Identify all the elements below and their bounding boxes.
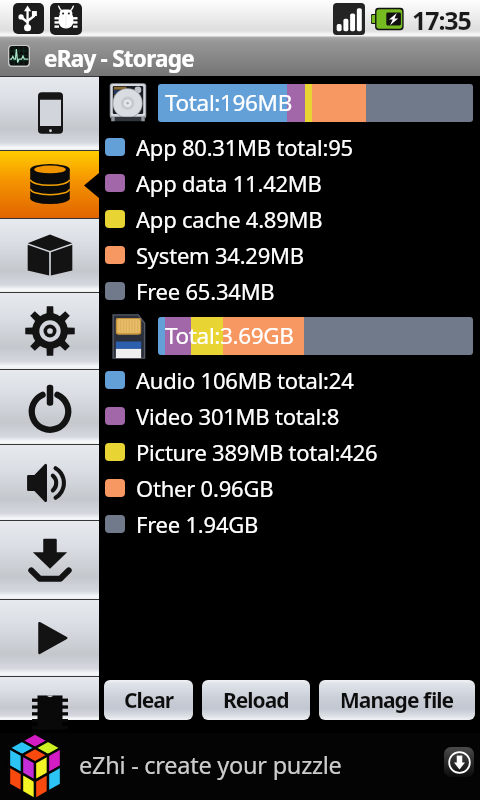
button[interactable]: Device xyxy=(0,76,99,150)
button[interactable]: App cache 4.89MB xyxy=(99,202,480,236)
button[interactable]: Download xyxy=(444,747,474,777)
staticText: Free 65.34MB xyxy=(136,276,275,306)
staticText: Total:3.69GB xyxy=(165,320,294,351)
button[interactable]: Storage xyxy=(0,150,99,218)
staticText: System 34.29MB xyxy=(136,240,304,270)
staticText: App 80.31MB total:95 xyxy=(136,132,353,162)
button[interactable]: Picture 389MB total:426 xyxy=(99,435,480,469)
button[interactable]: Video 301MB total:8 xyxy=(99,399,480,433)
staticText: Other 0.96GB xyxy=(136,473,274,503)
button[interactable]: Clear xyxy=(104,680,193,720)
button[interactable]: eZhi - create your puzzle xyxy=(0,733,480,800)
staticText: Audio 106MB total:24 xyxy=(136,365,354,395)
button[interactable]: Total:196MB xyxy=(158,84,473,122)
button[interactable]: Manage file xyxy=(319,680,475,720)
staticText: 17:35 xyxy=(412,3,471,37)
button[interactable]: Settings xyxy=(0,292,99,369)
button[interactable]: Download xyxy=(0,520,99,599)
staticText: Free 1.94GB xyxy=(136,509,259,539)
button[interactable]: Free 65.34MB xyxy=(99,274,480,308)
staticText: Total:196MB xyxy=(165,87,292,118)
button[interactable]: Reload xyxy=(202,680,310,720)
button[interactable]: Play xyxy=(0,599,99,676)
staticText: eRay - Storage xyxy=(44,43,194,74)
button[interactable]: App data 11.42MB xyxy=(99,166,480,200)
button[interactable]: App 80.31MB total:95 xyxy=(99,130,480,164)
button[interactable]: Sound xyxy=(0,444,99,521)
button[interactable]: Free 1.94GB xyxy=(99,507,480,541)
button[interactable]: Total:3.69GB xyxy=(158,317,473,355)
staticText: App data 11.42MB xyxy=(136,168,322,198)
button[interactable]: System 34.29MB xyxy=(99,238,480,272)
button[interactable]: Apps xyxy=(0,218,99,292)
staticText: eZhi - create your puzzle xyxy=(79,749,342,781)
staticText: Reload xyxy=(223,686,289,715)
staticText: Manage file xyxy=(340,686,454,715)
staticText: App cache 4.89MB xyxy=(136,204,323,234)
button[interactable]: Hardware xyxy=(0,676,99,720)
staticText: Video 301MB total:8 xyxy=(136,401,340,431)
button[interactable]: Audio 106MB total:24 xyxy=(99,363,480,397)
staticText: Picture 389MB total:426 xyxy=(136,437,378,467)
button[interactable]: Power xyxy=(0,369,99,444)
staticText: Clear xyxy=(124,686,174,715)
button[interactable]: Other 0.96GB xyxy=(99,471,480,505)
